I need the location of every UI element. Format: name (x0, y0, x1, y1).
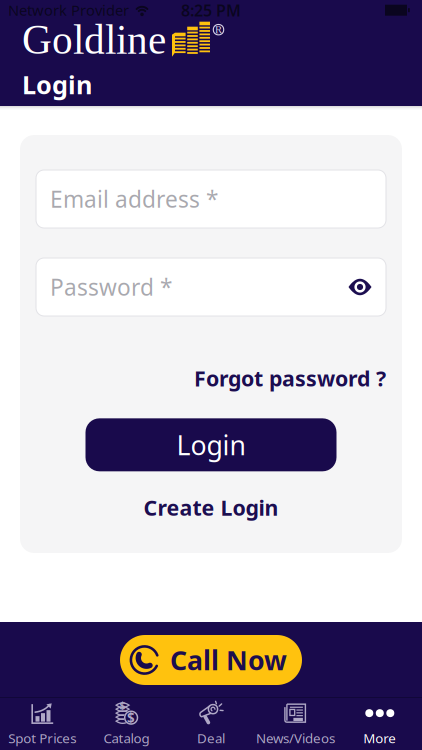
staticText: News/Videos (256, 729, 335, 747)
button[interactable]: Show password (348, 278, 372, 296)
staticText: Network Provider (8, 0, 129, 20)
staticText: Catalog (104, 729, 150, 747)
button[interactable]: Deal (169, 697, 253, 750)
button[interactable]: More (338, 697, 422, 750)
staticText: Call Now (170, 642, 287, 678)
staticText: Create Login (143, 493, 278, 522)
staticText: Goldline (22, 17, 166, 63)
staticText: 8:25 PM (181, 0, 241, 21)
button[interactable]: Create Login (143, 493, 278, 522)
button[interactable]: Spot Prices (0, 697, 84, 750)
button[interactable]: Login (85, 418, 336, 471)
button[interactable]: Call Now (120, 635, 302, 685)
staticText: Spot Prices (8, 729, 76, 747)
staticText: Deal (197, 729, 225, 747)
staticText: More (363, 729, 396, 747)
staticText: $ (120, 698, 126, 712)
staticText: Email address * (50, 184, 218, 214)
staticText: Password * (50, 272, 172, 302)
staticText: Forgot password ? (194, 364, 386, 392)
staticText: Login (22, 68, 92, 101)
button[interactable]: $ (84, 697, 169, 750)
staticText: $ (127, 709, 135, 726)
button[interactable]: Forgot password ? (194, 364, 386, 392)
staticText: Login (176, 427, 245, 462)
button[interactable]: News/Videos (253, 697, 338, 750)
staticText: R (215, 24, 222, 36)
